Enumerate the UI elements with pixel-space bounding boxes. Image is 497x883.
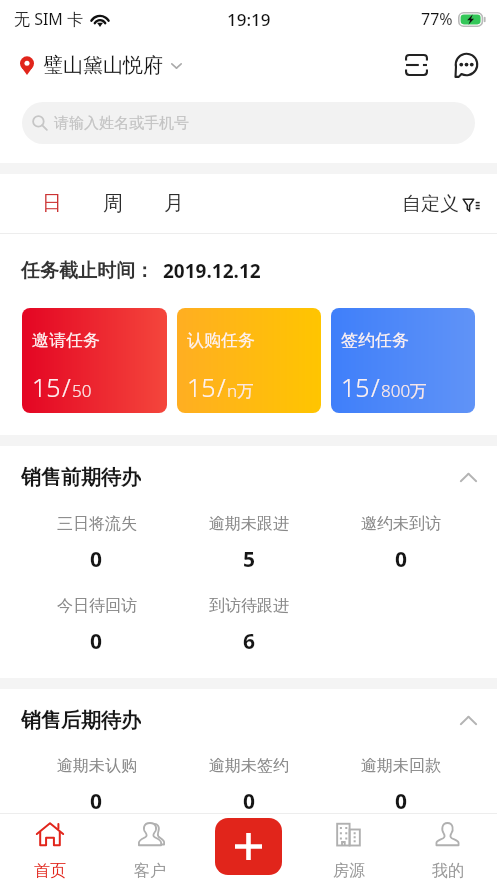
button[interactable]: 房源	[299, 814, 398, 883]
staticText: 6	[243, 627, 256, 656]
staticText: 自定义	[402, 192, 459, 216]
button[interactable]: 扫一扫	[397, 46, 435, 84]
button[interactable]: 首页	[0, 814, 100, 883]
staticText: 日	[42, 191, 62, 216]
button[interactable]: 逾期未回款	[325, 756, 477, 816]
staticText: 房源	[333, 861, 365, 881]
staticText: 50	[72, 379, 92, 402]
button[interactable]: 到访待跟进	[173, 596, 325, 656]
button[interactable]: 逾期未跟进	[173, 514, 325, 574]
staticText: 逾期未签约	[209, 756, 289, 776]
staticText: 认购任务	[187, 330, 255, 351]
staticText: 15	[341, 370, 370, 404]
staticText: 逾期未跟进	[209, 514, 289, 534]
button[interactable]: 邀约未到访	[325, 514, 477, 574]
staticText: 0	[90, 545, 103, 574]
staticText: 77%	[421, 8, 453, 30]
staticText: 璧山黛山悦府	[43, 53, 163, 78]
staticText: n万	[227, 379, 255, 402]
button[interactable]: 璧山黛山悦府	[20, 53, 182, 78]
button[interactable]: 客户	[100, 814, 200, 883]
button[interactable]: 认购任务	[177, 308, 321, 413]
button[interactable]: 日	[21, 174, 82, 233]
staticText: 请输入姓名或手机号	[54, 114, 189, 133]
staticText: 首页	[34, 861, 66, 881]
staticText: 15	[187, 370, 216, 404]
staticText: 无 SIM 卡	[14, 8, 84, 30]
staticText: 周	[103, 191, 123, 216]
staticText: 销售后期待办	[21, 708, 141, 732]
staticText: 签约任务	[341, 330, 409, 351]
staticText: 0	[395, 545, 408, 574]
button[interactable]: 自定义	[402, 192, 481, 216]
staticText: 到访待跟进	[209, 596, 289, 616]
staticText: 0	[90, 787, 103, 816]
staticText: 5	[243, 545, 256, 574]
staticText: 我的	[432, 861, 464, 881]
staticText: 2019.12.12	[163, 258, 261, 284]
button[interactable]: 收起	[453, 465, 483, 489]
button[interactable]: 周	[82, 174, 143, 233]
staticText: 客户	[134, 861, 166, 881]
staticText: 15	[32, 370, 61, 404]
staticText: 邀请任务	[32, 330, 100, 351]
staticText: 逾期未认购	[57, 756, 137, 776]
button[interactable]: 月	[143, 174, 204, 233]
staticText: 三日将流失	[57, 514, 137, 534]
button[interactable]: 逾期未签约	[173, 756, 325, 816]
staticText: 0	[243, 787, 256, 816]
staticText: /	[217, 370, 226, 404]
staticText: 0	[90, 627, 103, 656]
staticText: 19:19	[227, 8, 271, 31]
staticText: 0	[395, 787, 408, 816]
button[interactable]: 我的	[398, 814, 497, 883]
staticText: 邀约未到访	[361, 514, 441, 534]
staticText: 逾期未回款	[361, 756, 441, 776]
staticText: 月	[164, 191, 184, 216]
button[interactable]: 逾期未认购	[20, 756, 173, 816]
button[interactable]: 消息	[446, 46, 484, 84]
button[interactable]: 新增	[215, 818, 282, 875]
staticText: /	[62, 370, 71, 404]
staticText: /	[371, 370, 380, 404]
button[interactable]: 收起	[453, 708, 483, 732]
button[interactable]: 今日待回访	[20, 596, 173, 656]
button[interactable]: 三日将流失	[20, 514, 173, 574]
staticText: 800万	[381, 379, 428, 402]
button[interactable]: 签约任务	[331, 308, 475, 413]
staticText: 今日待回访	[57, 596, 137, 616]
staticText: 任务截止时间：	[21, 259, 154, 283]
staticText: 销售前期待办	[21, 465, 141, 489]
button[interactable]: 邀请任务	[22, 308, 167, 413]
button[interactable]: 请输入姓名或手机号	[22, 102, 475, 144]
